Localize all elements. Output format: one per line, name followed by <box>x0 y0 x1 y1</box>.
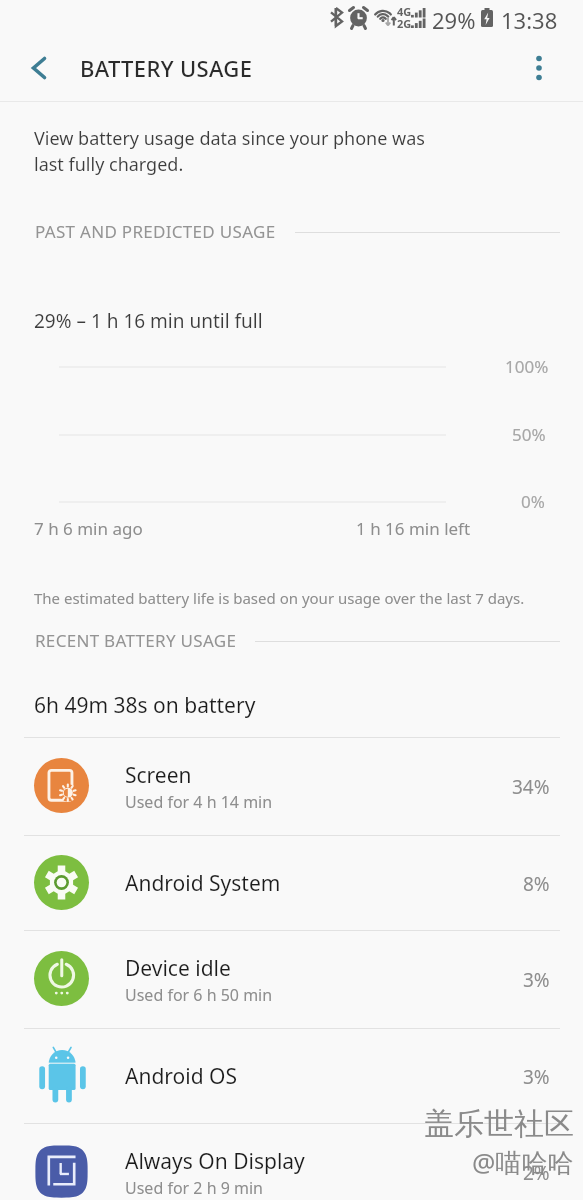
staticText: BATTERY USAGE <box>80 53 253 83</box>
staticText: @喵哈哈 <box>472 1144 574 1180</box>
staticText: 3% <box>523 967 550 993</box>
staticText: 盖乐世社区 <box>424 1105 574 1143</box>
staticText: The estimated battery life is based on y… <box>34 588 525 608</box>
button[interactable] <box>0 836 583 930</box>
staticText: Screen <box>125 761 192 790</box>
staticText: 13:38 <box>501 5 558 35</box>
staticText: 3% <box>523 1064 550 1090</box>
staticText: PAST AND PREDICTED USAGE <box>35 220 276 243</box>
button[interactable]: Back <box>16 45 62 91</box>
button[interactable] <box>0 1029 583 1123</box>
staticText: 1 h 16 min left <box>356 517 471 540</box>
staticText: 50% <box>512 423 546 446</box>
staticText: Device idle <box>125 954 231 983</box>
staticText: 2G <box>397 16 412 31</box>
staticText: 29% – 1 h 16 min until full <box>34 308 263 334</box>
button[interactable]: More options <box>518 47 560 89</box>
staticText: Used for 2 h 9 min <box>125 1177 263 1199</box>
staticText: RECENT BATTERY USAGE <box>35 629 237 652</box>
staticText: Always On Display <box>125 1147 305 1176</box>
button[interactable] <box>0 1124 583 1200</box>
staticText: Android OS <box>125 1062 237 1091</box>
staticText: Used for 6 h 50 min <box>125 984 273 1006</box>
button[interactable] <box>0 738 583 835</box>
staticText: 8% <box>523 871 550 897</box>
staticText: 0% <box>521 490 545 513</box>
staticText: 7 h 6 min ago <box>34 517 143 540</box>
button[interactable] <box>0 931 583 1028</box>
staticText: 100% <box>505 355 549 378</box>
staticText: 4G <box>397 4 412 19</box>
staticText: Used for 4 h 14 min <box>125 791 273 813</box>
staticText: 34% <box>512 774 550 800</box>
staticText: 6h 49m 38s on battery <box>34 691 256 720</box>
staticText: 2% <box>523 1160 550 1186</box>
staticText: View battery usage data since your phone… <box>34 126 425 176</box>
staticText: Android System <box>125 869 281 898</box>
staticText: 29% <box>432 5 476 35</box>
